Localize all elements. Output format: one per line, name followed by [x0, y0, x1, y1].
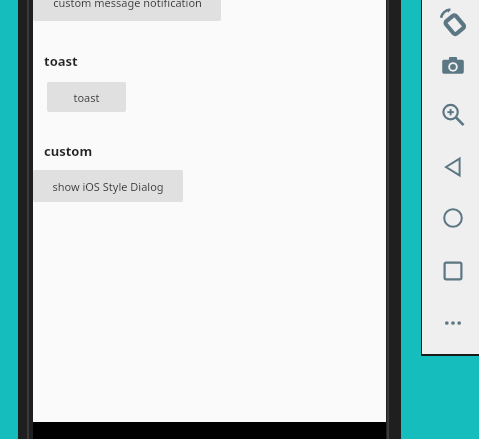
staticText: custom: [44, 142, 93, 160]
button[interactable]: Back: [432, 146, 474, 188]
button[interactable]: More: [432, 302, 474, 344]
button[interactable]: Rotate: [432, 1, 474, 43]
staticText: custom message notification: [53, 0, 202, 10]
button[interactable]: Take screenshot: [432, 45, 474, 87]
button[interactable]: toast: [47, 82, 126, 112]
button[interactable]: show iOS Style Dialog: [33, 170, 183, 202]
staticText: toast: [44, 52, 78, 70]
button[interactable]: Home: [432, 197, 474, 239]
button[interactable]: custom message notification: [33, 0, 221, 21]
button[interactable]: Overview: [432, 250, 474, 292]
staticText: toast: [73, 90, 100, 105]
staticText: show iOS Style Dialog: [52, 179, 164, 194]
button[interactable]: Zoom: [432, 94, 474, 136]
